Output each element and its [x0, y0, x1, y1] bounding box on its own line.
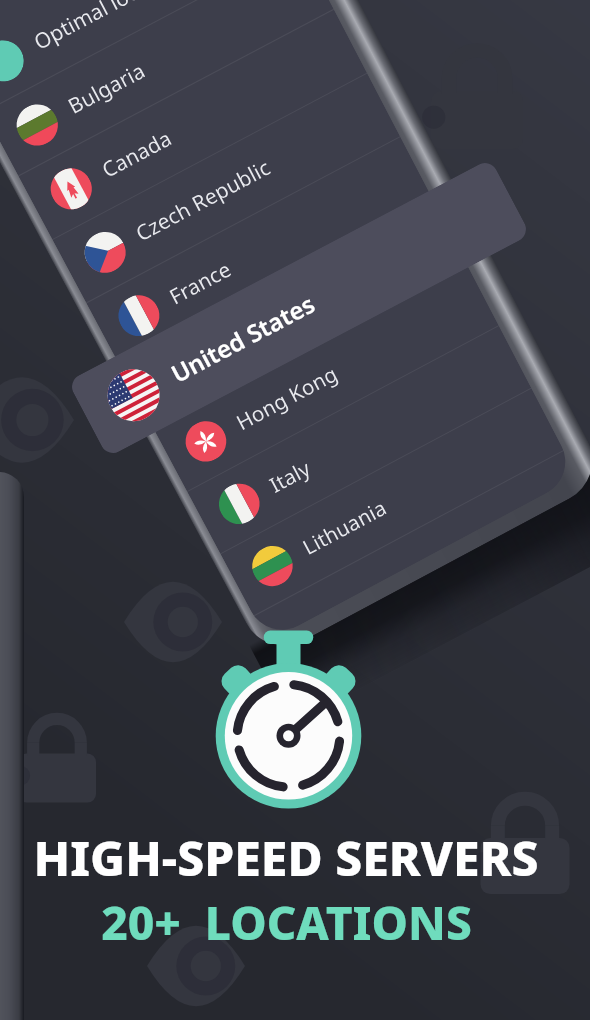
button[interactable]: Lithuania: [221, 389, 564, 616]
button[interactable]: Optimal location: [0, 0, 301, 112]
button[interactable]: Italy: [187, 326, 532, 554]
staticText: Germany: [198, 306, 291, 374]
button[interactable]: France: [86, 137, 433, 367]
button[interactable]: United States: [67, 158, 530, 457]
staticText: Canada: [97, 124, 177, 184]
staticText: Optimal location: [29, 0, 188, 57]
staticText: 20+ LOCATIONS: [101, 891, 472, 954]
button[interactable]: Bulgaria: [0, 0, 334, 176]
staticText: United States: [165, 287, 320, 390]
button[interactable]: Canada: [18, 10, 367, 240]
staticText: Bulgaria: [63, 56, 150, 121]
staticText: Lithuania: [298, 494, 391, 562]
button[interactable]: Czech Republic: [53, 74, 400, 303]
button[interactable]: Hong Kong: [154, 263, 499, 492]
staticText: Italy: [265, 454, 316, 499]
button[interactable]: Germany: [120, 200, 466, 429]
staticText: France: [164, 255, 236, 311]
staticText: Czech Republic: [131, 153, 276, 248]
staticText: Hong Kong: [231, 359, 343, 437]
staticText: HIGH-SPEED SERVERS: [33, 825, 539, 890]
